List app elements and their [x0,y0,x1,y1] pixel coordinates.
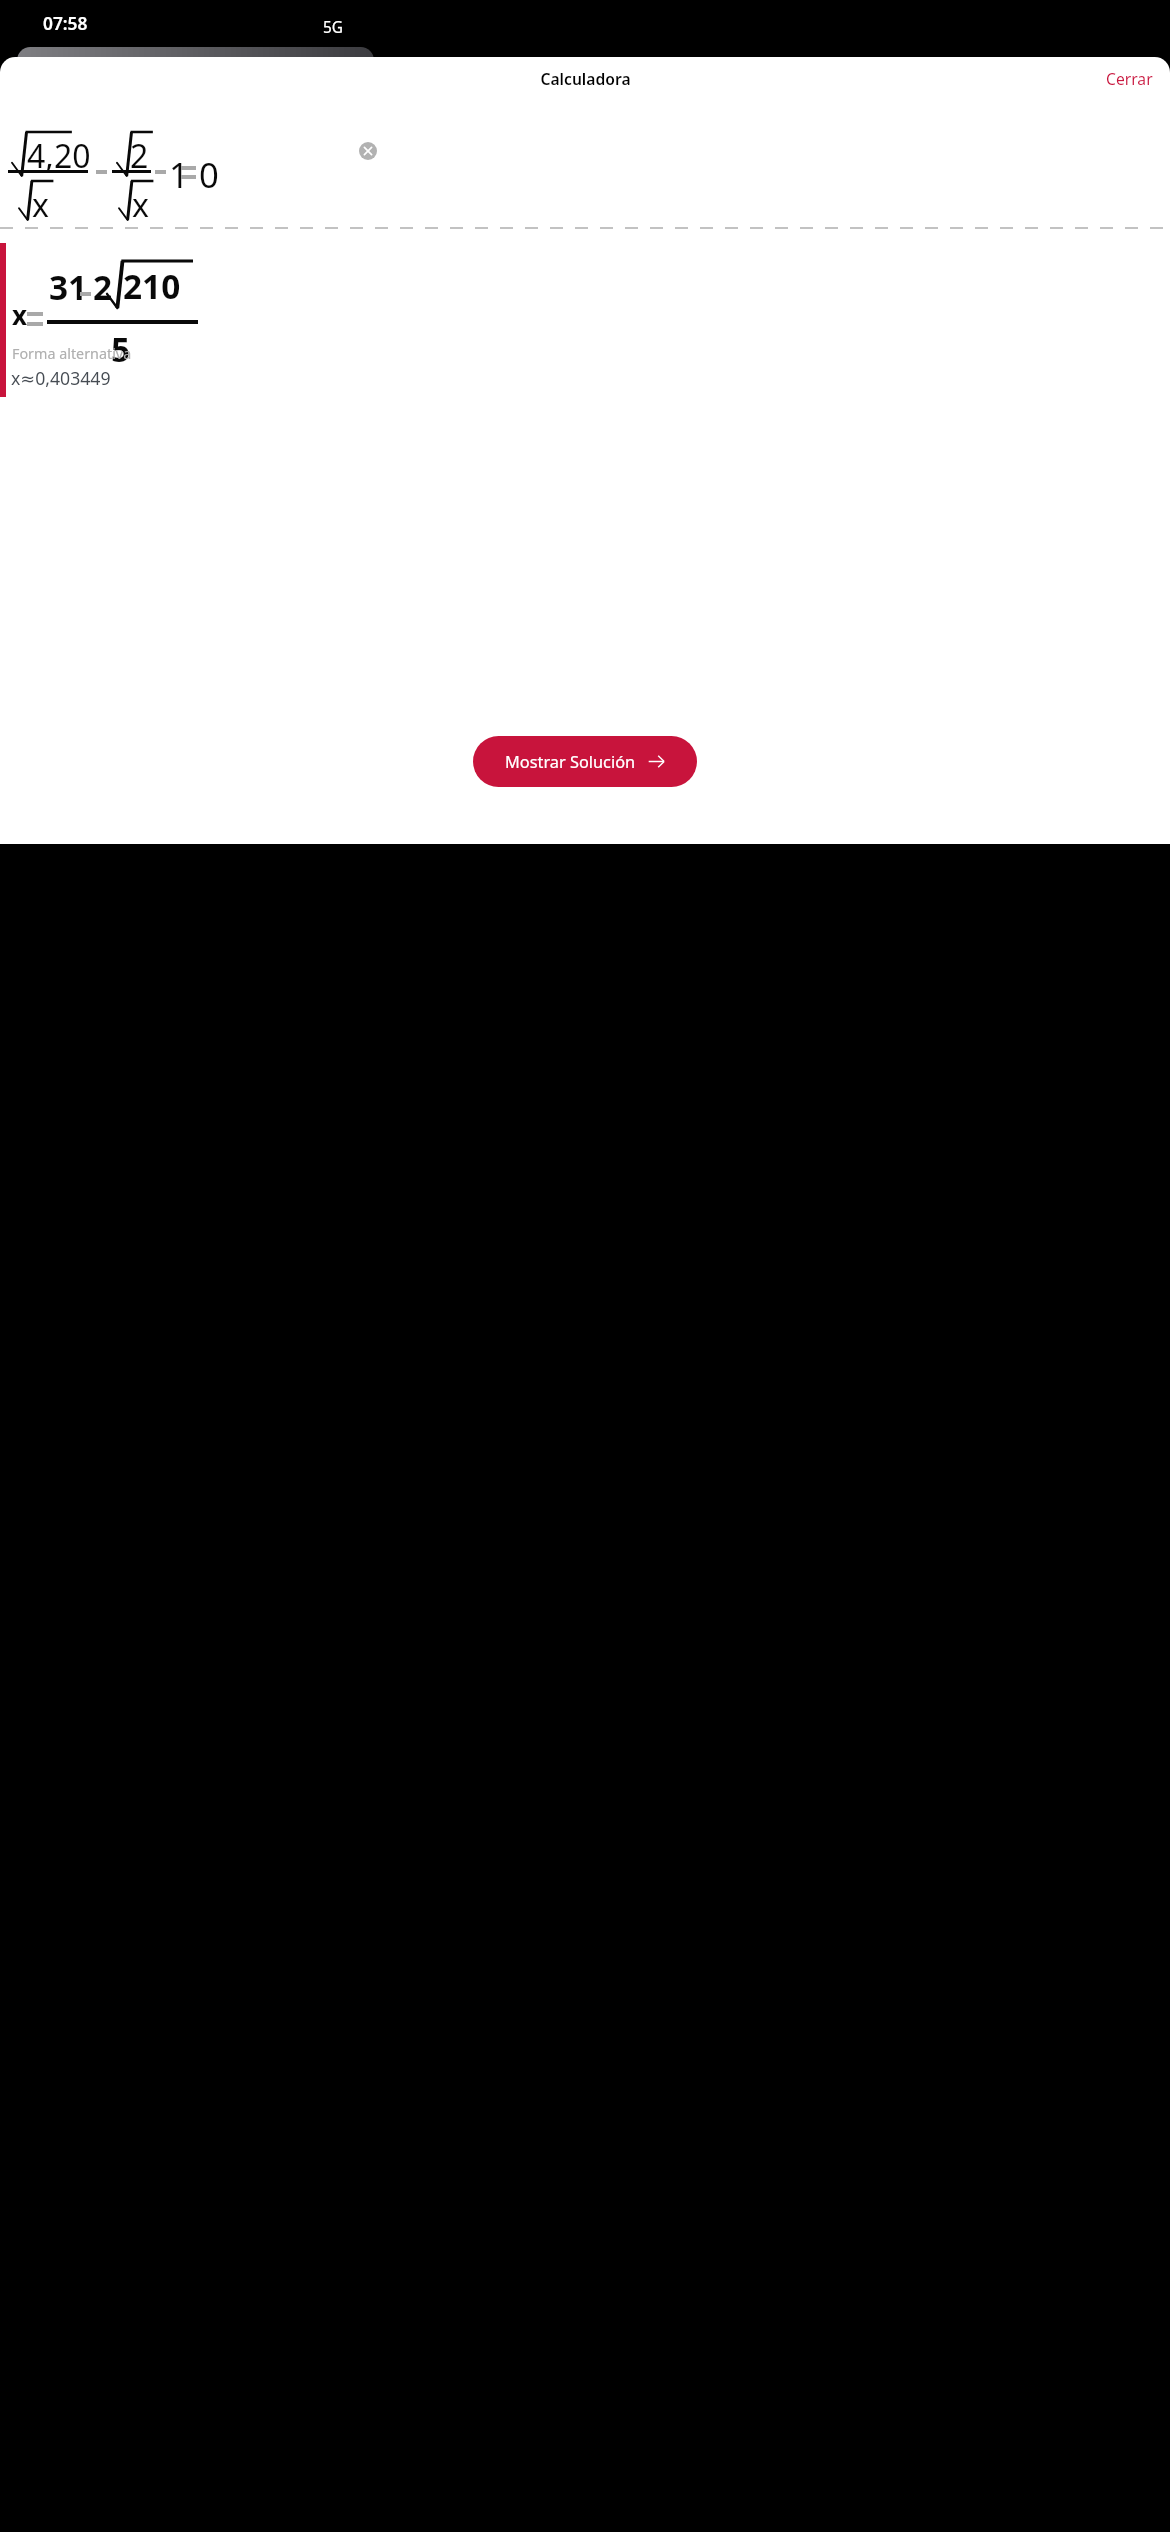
staticText: Mostrar Solución [505,751,636,773]
staticText: x [12,297,28,332]
staticText: 1 [169,151,189,198]
staticText: 4,20 [27,134,91,178]
staticText: 31 [49,264,88,309]
staticText: 0 [199,151,219,198]
staticText: 5G [323,17,343,38]
staticText: x [32,183,49,227]
staticText: x [132,183,149,227]
staticText: Forma alternativa [12,344,132,364]
staticText: 5 [111,326,131,371]
staticText: 2 [130,134,149,178]
button[interactable]: Cerrar [1102,63,1157,94]
staticText: 07:58 [43,11,88,35]
staticText: x≈0,403449 [11,366,111,390]
staticText: Cerrar [1106,68,1153,89]
button[interactable]: Borrar ecuación [359,142,377,160]
button[interactable]: Mostrar Solución [473,736,697,787]
staticText: 210 [123,263,181,308]
staticText: 2 [93,264,113,309]
staticText: Calculadora [540,68,631,89]
